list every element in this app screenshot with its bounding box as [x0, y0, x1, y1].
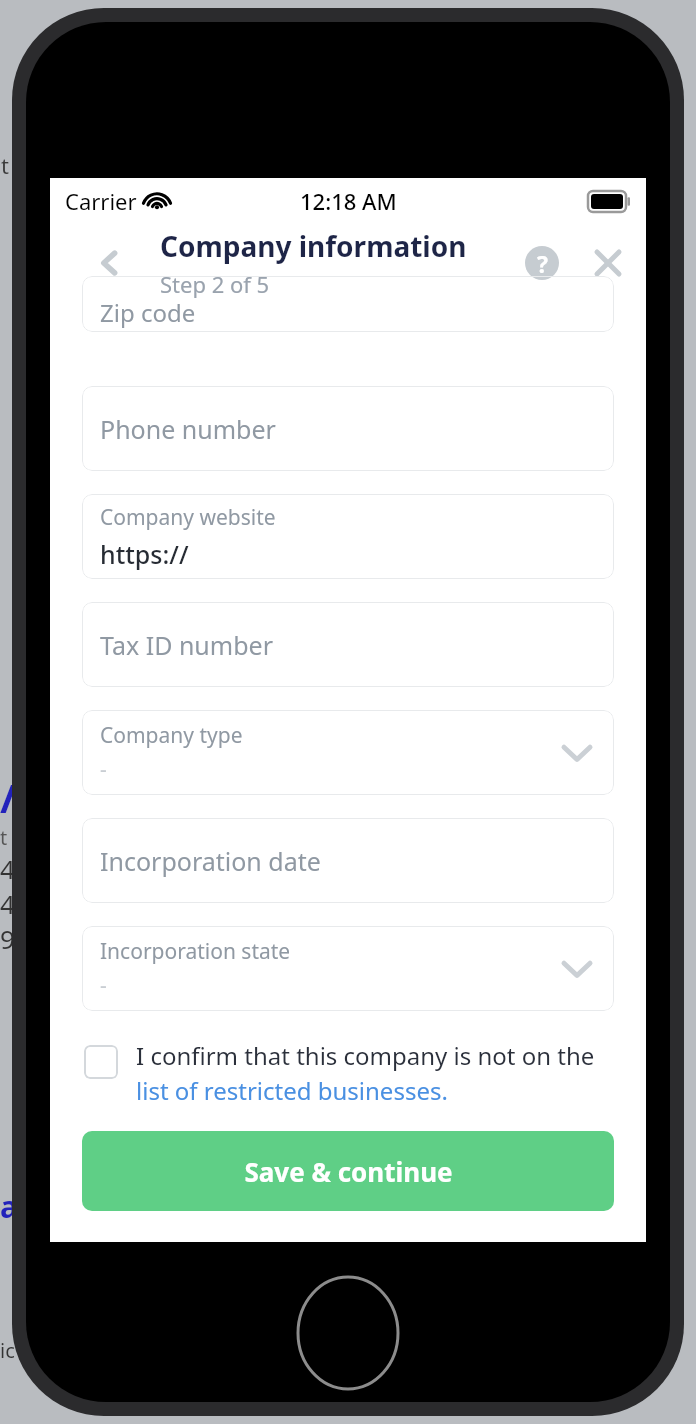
staticText: - — [100, 755, 107, 784]
button[interactable]: Zip code — [82, 276, 614, 332]
staticText: Company information — [160, 227, 467, 265]
staticText: Company type — [100, 721, 243, 750]
button[interactable]: Help — [518, 239, 566, 287]
staticText: Save & continue — [244, 1154, 453, 1189]
button[interactable]: Close — [584, 239, 632, 287]
button[interactable]: Tax ID number — [82, 602, 614, 687]
staticText: t — [1, 150, 9, 180]
button[interactable]: Company website — [82, 494, 614, 579]
staticText: / — [0, 770, 17, 824]
staticText: - — [100, 971, 107, 1000]
staticText: Incorporation state — [100, 937, 291, 966]
staticText: I confirm that this company is not on th… — [136, 1039, 595, 1072]
button[interactable]: Company type — [82, 710, 614, 795]
staticText: Tax ID number — [100, 628, 273, 662]
staticText: Zip code — [100, 296, 196, 329]
staticText: 4 — [0, 886, 15, 921]
button[interactable]: list of restricted businesses. — [136, 1074, 448, 1107]
staticText: Step 2 of 5 — [160, 269, 270, 299]
staticText: ? — [537, 248, 548, 279]
staticText: Incorporation date — [100, 844, 321, 878]
button[interactable]: Phone number — [82, 386, 614, 471]
staticText: Carrier — [65, 186, 137, 216]
button[interactable]: Incorporation state — [82, 926, 614, 1011]
staticText: a — [0, 1186, 18, 1227]
staticText: 9 — [0, 921, 15, 956]
button[interactable]: Save & continue — [82, 1131, 614, 1211]
staticText: 12:18 AM — [300, 186, 397, 216]
staticText: https:// — [100, 537, 189, 571]
staticText: ic — [0, 1337, 15, 1364]
button[interactable]: Incorporation date — [82, 818, 614, 903]
staticText: 4 — [0, 851, 15, 886]
staticText: t — [0, 824, 8, 851]
staticText: Company website — [100, 503, 276, 532]
button[interactable]: I confirm that this company is not on th… — [82, 1039, 614, 1107]
button[interactable]: Back — [88, 241, 132, 285]
staticText: Phone number — [100, 412, 276, 446]
